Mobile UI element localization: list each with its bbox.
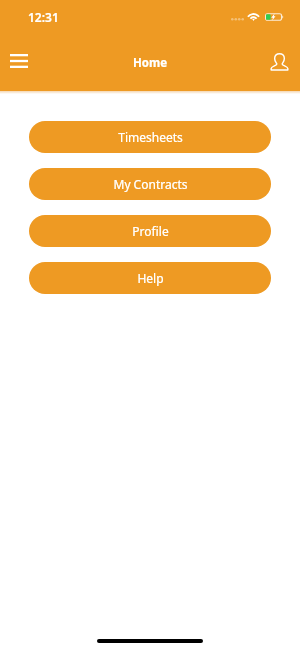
button[interactable]: My Contracts bbox=[29, 168, 271, 200]
staticText: Profile bbox=[132, 223, 169, 239]
staticText: Home bbox=[133, 55, 168, 71]
button[interactable]: Timesheets bbox=[29, 121, 271, 153]
button[interactable]: Menu bbox=[1, 43, 37, 79]
button[interactable]: Help bbox=[29, 262, 271, 294]
button[interactable]: Account bbox=[261, 44, 297, 80]
button[interactable]: Profile bbox=[29, 215, 271, 247]
staticText: Timesheets bbox=[118, 129, 183, 145]
staticText: My Contracts bbox=[113, 176, 188, 192]
staticText: 12:31 bbox=[28, 9, 59, 25]
staticText: Help bbox=[137, 270, 164, 286]
